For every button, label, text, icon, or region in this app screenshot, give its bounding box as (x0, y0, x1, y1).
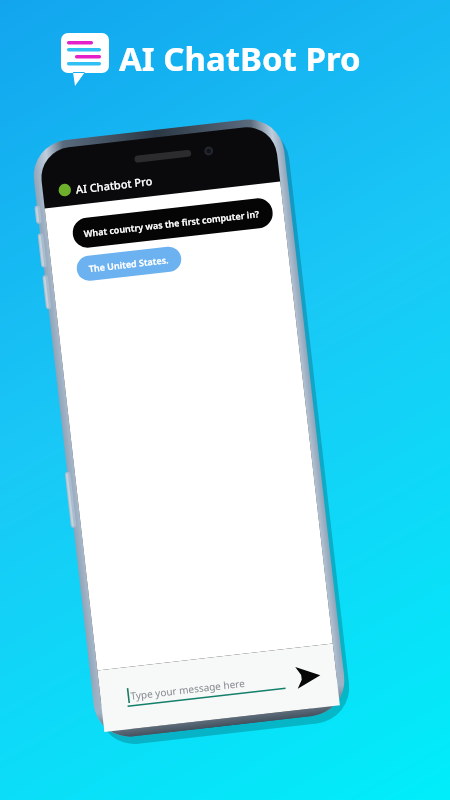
button[interactable]: AI ChatBot Pro promo (0, 0, 450, 800)
